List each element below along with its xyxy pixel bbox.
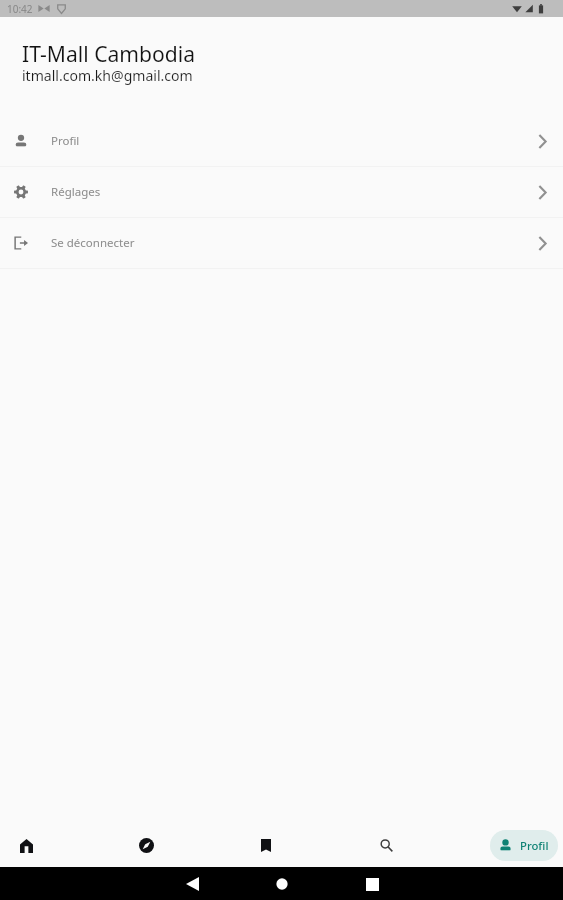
button[interactable]: Recents	[357, 869, 387, 899]
button[interactable]: Home	[267, 869, 297, 899]
button[interactable]: Profil	[490, 830, 558, 861]
button[interactable]: Explorer	[126, 819, 166, 872]
button[interactable]: Accueil	[6, 819, 46, 872]
button[interactable]: Back	[177, 869, 207, 899]
staticText: itmall.com.kh@gmail.com	[22, 66, 193, 85]
button[interactable]: Réglages	[0, 167, 563, 217]
staticText: 10:42	[7, 2, 33, 16]
staticText: Profil	[520, 838, 549, 853]
staticText: IT-Mall Cambodia	[22, 39, 196, 68]
button[interactable]: Recherche	[366, 819, 406, 872]
button[interactable]: Favoris	[246, 819, 286, 872]
staticText: Réglages	[51, 184, 101, 200]
button[interactable]: Se déconnecter	[0, 218, 563, 268]
button[interactable]: Profil	[0, 116, 563, 166]
staticText: Profil	[51, 133, 80, 149]
staticText: Se déconnecter	[51, 235, 135, 251]
